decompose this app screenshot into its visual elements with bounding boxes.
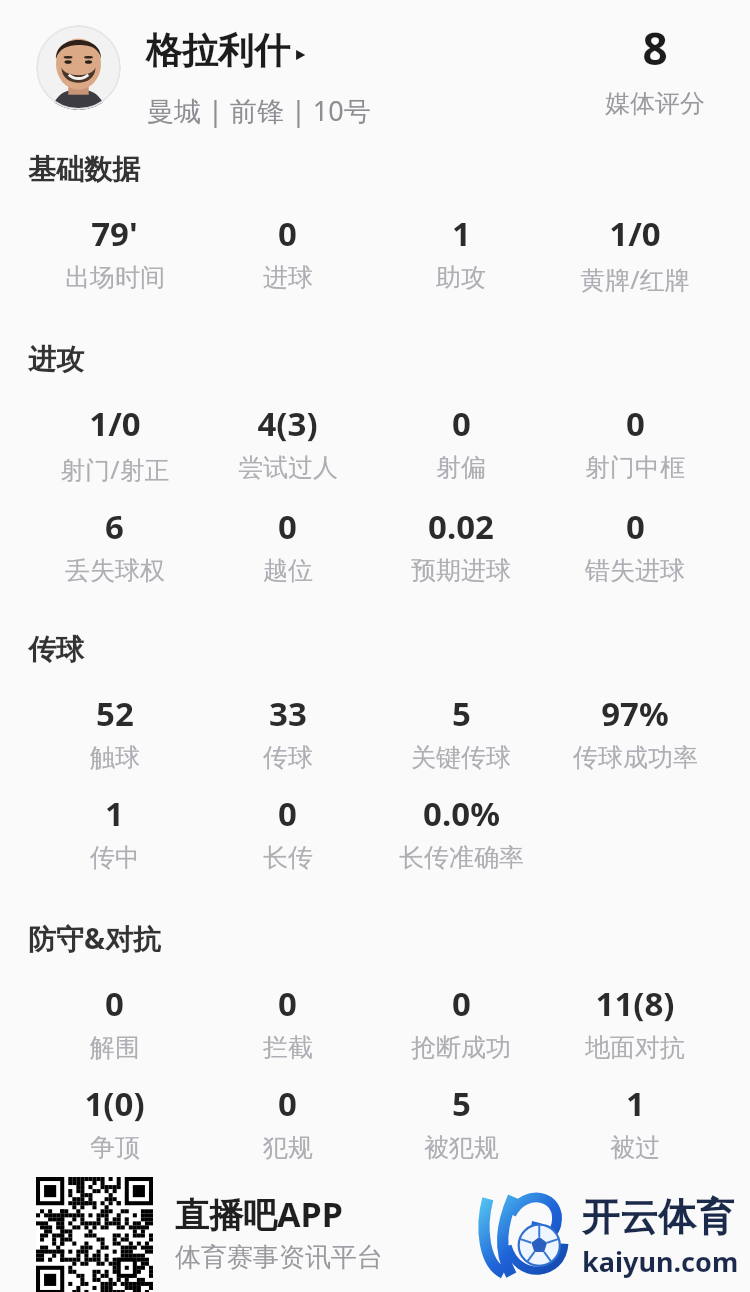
button[interactable]: 1 <box>28 791 201 873</box>
staticText: 传中 <box>90 842 140 873</box>
staticText: 0 <box>278 791 297 836</box>
staticText: 体育赛事资讯平台 <box>175 1241 383 1274</box>
staticText: 5 <box>452 1081 471 1126</box>
button[interactable]: 0.0% <box>374 791 548 873</box>
button[interactable]: 0 <box>201 791 374 873</box>
staticText: 预期进球 <box>411 555 511 586</box>
button[interactable]: 开云体育 <box>478 1177 740 1287</box>
staticText: 0 <box>278 981 297 1026</box>
staticText: 传球成功率 <box>573 742 698 773</box>
button[interactable]: 1 <box>548 1081 722 1163</box>
button[interactable]: 8 <box>592 18 718 119</box>
staticText: 8 <box>642 18 668 78</box>
staticText: 0 <box>452 401 471 446</box>
button[interactable]: 0 <box>374 981 548 1063</box>
staticText: 1 <box>105 791 124 836</box>
staticText: 进攻 <box>28 342 84 377</box>
button[interactable]: 6 <box>28 504 201 586</box>
staticText: 错失进球 <box>585 555 685 586</box>
staticText: 丢失球权 <box>65 555 165 586</box>
button[interactable]: 4(3) <box>201 401 374 483</box>
staticText: 0.0% <box>423 791 500 836</box>
staticText: 0 <box>105 981 124 1026</box>
staticText: 被犯规 <box>424 1132 499 1163</box>
staticText: 0 <box>278 211 297 256</box>
button[interactable]: 1 <box>374 211 548 293</box>
staticText: 1/0 <box>609 211 661 256</box>
staticText: 52 <box>96 691 134 736</box>
staticText: 1/0 <box>89 401 141 446</box>
staticText: 防守&对抗 <box>28 919 162 957</box>
button[interactable]: 0 <box>201 504 374 586</box>
staticText: 被过 <box>610 1132 660 1163</box>
staticText: 拦截 <box>263 1032 313 1063</box>
staticText: 进球 <box>263 262 313 293</box>
staticText: 4(3) <box>257 401 318 446</box>
staticText: 射门/射正 <box>60 452 170 486</box>
staticText: 基础数据 <box>28 152 140 187</box>
button[interactable]: 二维码 <box>36 1177 153 1292</box>
staticText: 长传 <box>263 842 313 873</box>
button[interactable]: 0 <box>548 504 722 586</box>
staticText: 黄牌/红牌 <box>580 262 690 296</box>
button[interactable]: 0.02 <box>374 504 548 586</box>
staticText: 1 <box>626 1081 645 1126</box>
staticText: 5 <box>452 691 471 736</box>
staticText: 格拉利什 <box>146 28 290 73</box>
button[interactable]: 0 <box>201 211 374 293</box>
staticText: 助攻 <box>436 262 486 293</box>
staticText: 曼城 | 前锋 | 10号 <box>147 92 371 129</box>
staticText: 越位 <box>263 555 313 586</box>
staticText: 触球 <box>90 742 140 773</box>
staticText: 0.02 <box>428 504 494 549</box>
staticText: 传球 <box>263 742 313 773</box>
button[interactable]: 97% <box>548 691 722 773</box>
staticText: 地面对抗 <box>585 1032 685 1063</box>
button[interactable]: 0 <box>548 401 722 483</box>
staticText: 抢断成功 <box>411 1032 511 1063</box>
button[interactable]: 1(0) <box>28 1081 201 1163</box>
staticText: 11(8) <box>595 981 675 1026</box>
staticText: 射门中框 <box>585 452 685 483</box>
staticText: 传球 <box>28 632 84 667</box>
staticText: 0 <box>452 981 471 1026</box>
staticText: 争顶 <box>90 1132 140 1163</box>
staticText: 长传准确率 <box>399 842 524 873</box>
button[interactable]: 格拉利什 <box>146 28 308 73</box>
staticText: 射偏 <box>436 452 486 483</box>
staticText: 79' <box>91 211 138 256</box>
button[interactable]: 直播吧APP <box>175 1191 383 1274</box>
staticText: 0 <box>626 401 645 446</box>
staticText: 出场时间 <box>65 262 165 293</box>
staticText: 媒体评分 <box>605 88 705 119</box>
staticText: 1 <box>452 211 471 256</box>
button[interactable]: 11(8) <box>548 981 722 1063</box>
staticText: 0 <box>626 504 645 549</box>
button[interactable]: 0 <box>28 981 201 1063</box>
button[interactable]: 5 <box>374 691 548 773</box>
staticText: kaiyun.com <box>582 1243 739 1280</box>
staticText: 6 <box>105 504 124 549</box>
button[interactable]: 79' <box>28 211 201 293</box>
staticText: 解围 <box>90 1032 140 1063</box>
button[interactable]: 0 <box>201 1081 374 1163</box>
staticText: 0 <box>278 1081 297 1126</box>
button[interactable]: 0 <box>374 401 548 483</box>
button[interactable]: 1/0 <box>548 211 722 296</box>
button[interactable]: 52 <box>28 691 201 773</box>
staticText: 97% <box>601 691 669 736</box>
staticText: 直播吧APP <box>175 1191 343 1237</box>
button[interactable]: 33 <box>201 691 374 773</box>
staticText: 0 <box>278 504 297 549</box>
staticText: 1(0) <box>84 1081 145 1126</box>
staticText: 关键传球 <box>411 742 511 773</box>
staticText: 犯规 <box>263 1132 313 1163</box>
staticText: 33 <box>269 691 307 736</box>
staticText: 尝试过人 <box>238 452 338 483</box>
button[interactable]: 球员头像 <box>36 25 121 110</box>
staticText: 开云体育 <box>582 1193 734 1241</box>
button[interactable]: 5 <box>374 1081 548 1163</box>
button[interactable]: 1/0 <box>28 401 201 486</box>
button[interactable]: 0 <box>201 981 374 1063</box>
